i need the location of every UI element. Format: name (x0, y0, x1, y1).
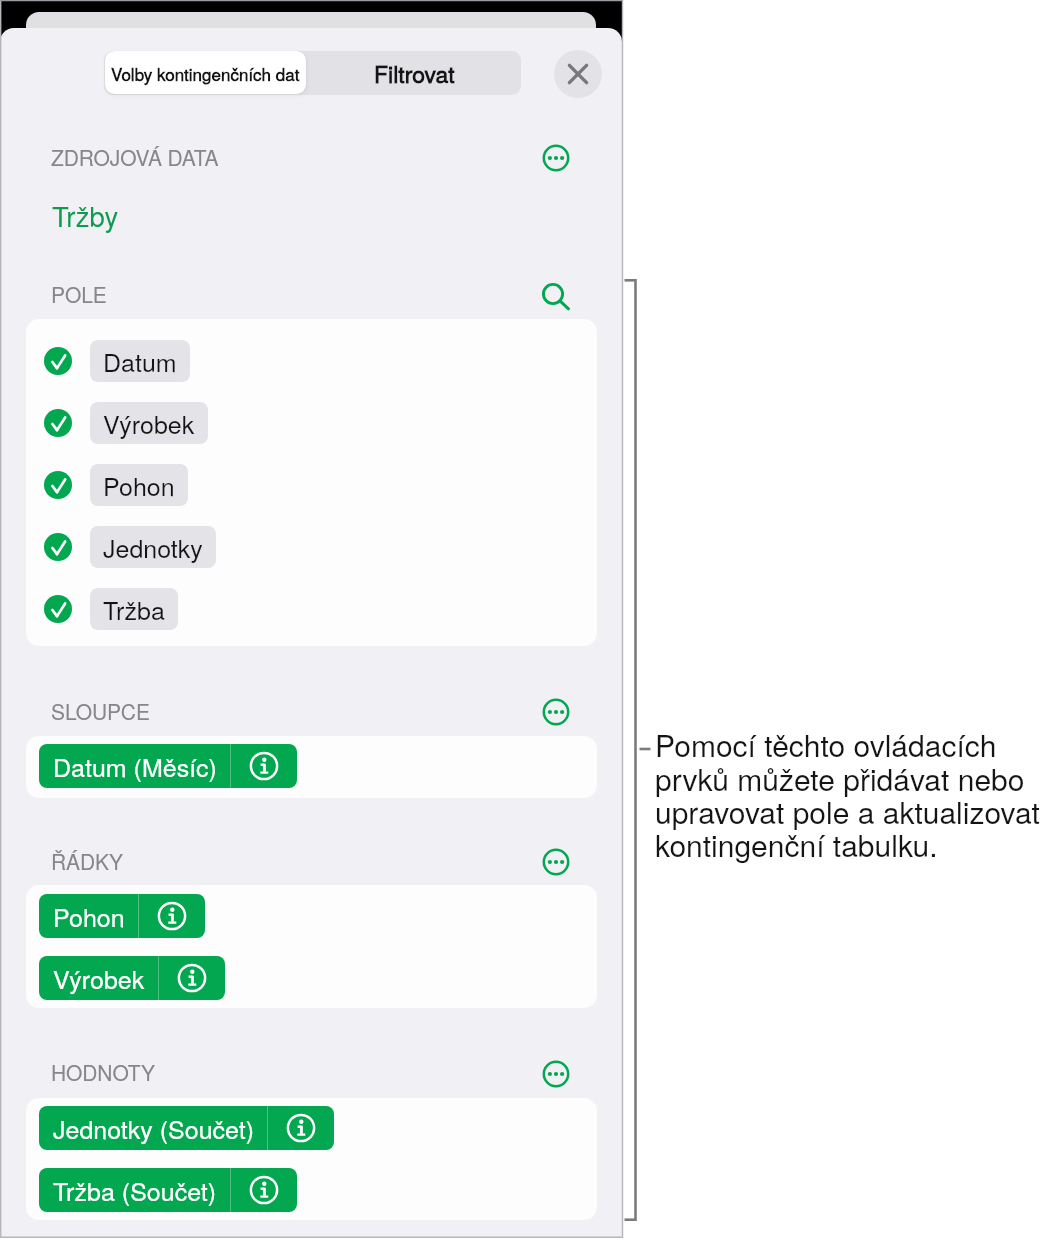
button[interactable]: Tržba (90, 588, 178, 630)
button[interactable] (44, 409, 72, 437)
staticText: Pohon (103, 467, 175, 503)
staticText: Pohon (53, 898, 125, 934)
button[interactable]: Pohon (90, 464, 188, 506)
staticText: ZDROJOVÁ DATA (51, 142, 219, 172)
button[interactable]: Jednotky (90, 526, 216, 568)
staticText: Jednotky (103, 529, 203, 565)
button[interactable]: Volby kontingenčních dat (105, 51, 306, 94)
button[interactable]: Hledat (533, 274, 573, 314)
staticText: Tržba (103, 591, 165, 627)
button[interactable] (44, 595, 72, 623)
staticText: Volby kontingenčních dat (111, 61, 300, 85)
button[interactable] (44, 347, 72, 375)
button[interactable]: Zavřít (554, 50, 602, 98)
staticText: Datum (103, 343, 177, 379)
button[interactable]: Filtrovat (307, 51, 521, 95)
button[interactable]: Datum (Měsíc) (39, 744, 297, 788)
staticText: POLE (51, 279, 107, 309)
staticText: SLOUPCE (51, 696, 150, 726)
staticText: Jednotky (Součet) (53, 1110, 254, 1146)
button[interactable]: Další volby (536, 1054, 576, 1094)
staticText: Tržby (52, 195, 119, 234)
button[interactable]: Tržba (Součet) (39, 1168, 297, 1212)
staticText: Tržba (Součet) (53, 1172, 217, 1208)
button[interactable]: Další volby (536, 692, 576, 732)
button[interactable]: Datum (90, 340, 190, 382)
staticText: Datum (Měsíc) (53, 748, 217, 784)
button[interactable]: Výrobek (39, 956, 225, 1000)
button[interactable]: Další volby (536, 138, 576, 178)
button[interactable] (44, 533, 72, 561)
button[interactable]: Jednotky (Součet) (39, 1106, 334, 1150)
button[interactable]: Výrobek (90, 402, 208, 444)
staticText: Výrobek (53, 960, 145, 996)
button[interactable]: Další volby (536, 842, 576, 882)
staticText: ŘÁDKY (51, 846, 123, 876)
staticText: Filtrovat (374, 57, 455, 90)
button[interactable] (44, 471, 72, 499)
button[interactable]: Pohon (39, 894, 205, 938)
staticText: Pomocí těchto ovládacích prvků můžete př… (655, 723, 1045, 865)
staticText: HODNOTY (51, 1057, 155, 1087)
staticText: Výrobek (103, 405, 195, 441)
